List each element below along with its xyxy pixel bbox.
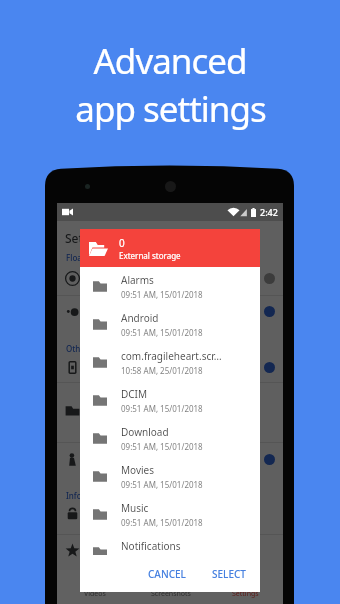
- button[interactable]: DCIM: [80, 381, 260, 419]
- staticText: Movies: [121, 463, 155, 477]
- button[interactable]: SELECT: [206, 562, 252, 586]
- staticText: Download: [121, 425, 169, 439]
- button[interactable]: com.fragileheart.scr…: [80, 343, 260, 381]
- staticText: 09:51 AM, 15/01/2018: [121, 289, 203, 300]
- button[interactable]: 0: [80, 229, 260, 267]
- staticText: Settings: [65, 230, 112, 246]
- button[interactable]: Download: [80, 419, 260, 457]
- staticText: 09:51 AM, 15/01/2018: [121, 327, 203, 338]
- staticText: 0: [119, 236, 125, 250]
- staticText: CANCEL: [148, 567, 186, 581]
- staticText: Output directory: [92, 398, 171, 412]
- staticText: Settings: [232, 589, 259, 599]
- button[interactable]: Movies: [80, 457, 260, 495]
- staticText: Advanced: [93, 37, 247, 85]
- staticText: SELECT: [212, 567, 246, 581]
- staticText: Shake to stop recording: [92, 369, 182, 380]
- staticText: Music: [121, 501, 149, 515]
- staticText: External storage: [119, 250, 181, 261]
- staticText: Alarms: [121, 273, 154, 287]
- staticText: 2:42: [260, 206, 278, 218]
- button[interactable]: Show touches: [57, 440, 283, 478]
- staticText: Floating button: [92, 266, 165, 280]
- staticText: Info: [66, 490, 82, 501]
- staticText: Videos: [84, 589, 106, 599]
- staticText: app settings: [75, 85, 266, 133]
- staticText: DCIM: [121, 387, 148, 401]
- button[interactable]: Settings: [208, 570, 283, 604]
- staticText: 09:51 AM, 15/01/2018: [121, 517, 203, 528]
- staticText: 09:51 AM, 15/01/2018: [121, 403, 203, 414]
- staticText: 09:51 AM, 15/01/2018: [121, 441, 203, 452]
- staticText: com.fragileheart.scr…: [121, 349, 222, 363]
- staticText: Screenshots: [151, 589, 191, 599]
- staticText: Show touches: [92, 447, 158, 461]
- staticText: Shake to stop: [92, 355, 156, 369]
- button[interactable]: Android: [80, 305, 260, 343]
- staticText: Show floating button: [92, 280, 171, 291]
- button[interactable]: Magic button: [57, 292, 283, 330]
- button[interactable]: Notifications: [80, 533, 260, 571]
- button[interactable]: Output directory: [57, 391, 283, 429]
- staticText: Tap to start/stop: [92, 313, 154, 324]
- staticText: 09:51 AM, 15/01/2018: [121, 479, 203, 490]
- button[interactable]: Shake to stop: [57, 348, 283, 386]
- button[interactable]: CANCEL: [142, 562, 192, 586]
- button[interactable]: Videos: [57, 570, 133, 604]
- button[interactable]: Rate us: [57, 531, 283, 569]
- staticText: Other: [66, 343, 89, 354]
- staticText: Android: [121, 311, 159, 325]
- button[interactable]: Screenshots: [133, 570, 208, 604]
- staticText: Privacy policy: [92, 506, 156, 520]
- button[interactable]: Privacy policy: [57, 494, 283, 532]
- staticText: Notifications: [121, 539, 181, 553]
- staticText: Rate us: [92, 543, 127, 557]
- button[interactable]: Floating button: [57, 259, 283, 297]
- staticText: Show screen touches: [92, 461, 172, 472]
- staticText: 10:58 AM, 25/01/2018: [121, 365, 203, 376]
- button[interactable]: Alarms: [80, 267, 260, 305]
- button[interactable]: Music: [80, 495, 260, 533]
- staticText: Floating controls: [66, 252, 131, 263]
